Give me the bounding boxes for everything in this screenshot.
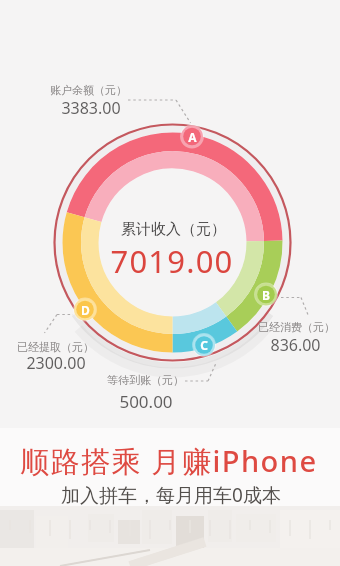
staticText: 836.00 [270,334,321,356]
staticText: 2300.00 [26,352,86,374]
staticText: D [81,302,90,318]
staticText: 3383.00 [61,97,121,119]
staticText: 已经提取（元） [17,340,94,354]
staticText: 账户余额（元） [50,83,127,97]
staticText: 顺路搭乘 月赚iPhone [20,441,318,481]
button[interactable]: 顺路搭乘 月赚iPhone [0,430,340,566]
staticText: 加入拼车，每月用车0成本 [61,482,281,508]
staticText: 7019.00 [110,240,234,282]
staticText: 500.00 [119,390,173,413]
staticText: B [262,287,270,303]
staticText: C [200,337,208,353]
staticText: 等待到账（元） [107,373,184,387]
staticText: 累计收入（元） [121,220,226,239]
staticText: 已经消费（元） [258,320,335,334]
staticText: A [188,129,197,145]
